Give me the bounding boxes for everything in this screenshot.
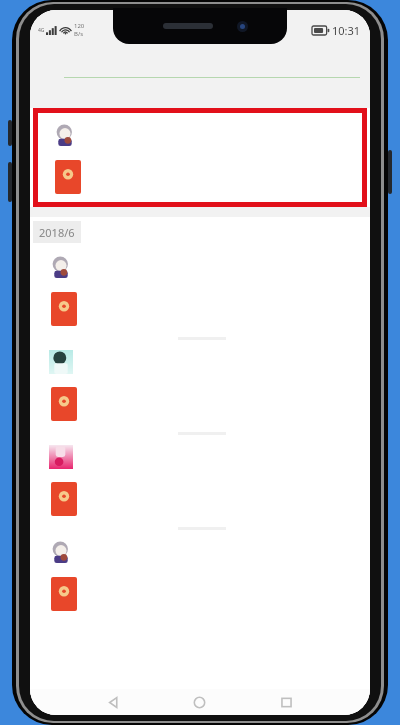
button[interactable]: Red envelope (55, 160, 81, 194)
button[interactable]: Back (70, 689, 156, 715)
button[interactable]: Red envelope (51, 577, 77, 611)
button[interactable]: Red envelope (51, 292, 77, 326)
staticText: 4G (38, 27, 45, 34)
button[interactable]: Red envelope (30, 342, 370, 429)
button[interactable]: Red envelope (51, 482, 77, 516)
staticText: 2018/6 (39, 225, 75, 240)
button[interactable]: Red envelope (33, 108, 367, 207)
staticText: B/s (74, 30, 84, 38)
button[interactable]: Recent apps (243, 689, 330, 715)
button[interactable]: Red envelope (30, 437, 370, 524)
button[interactable]: Red envelope (51, 387, 77, 421)
staticText: 10:31 (332, 23, 361, 38)
button[interactable]: Red envelope (30, 247, 370, 334)
button[interactable]: Home (156, 689, 243, 715)
button[interactable]: Red envelope (30, 532, 370, 619)
staticText: 120 (74, 22, 85, 30)
